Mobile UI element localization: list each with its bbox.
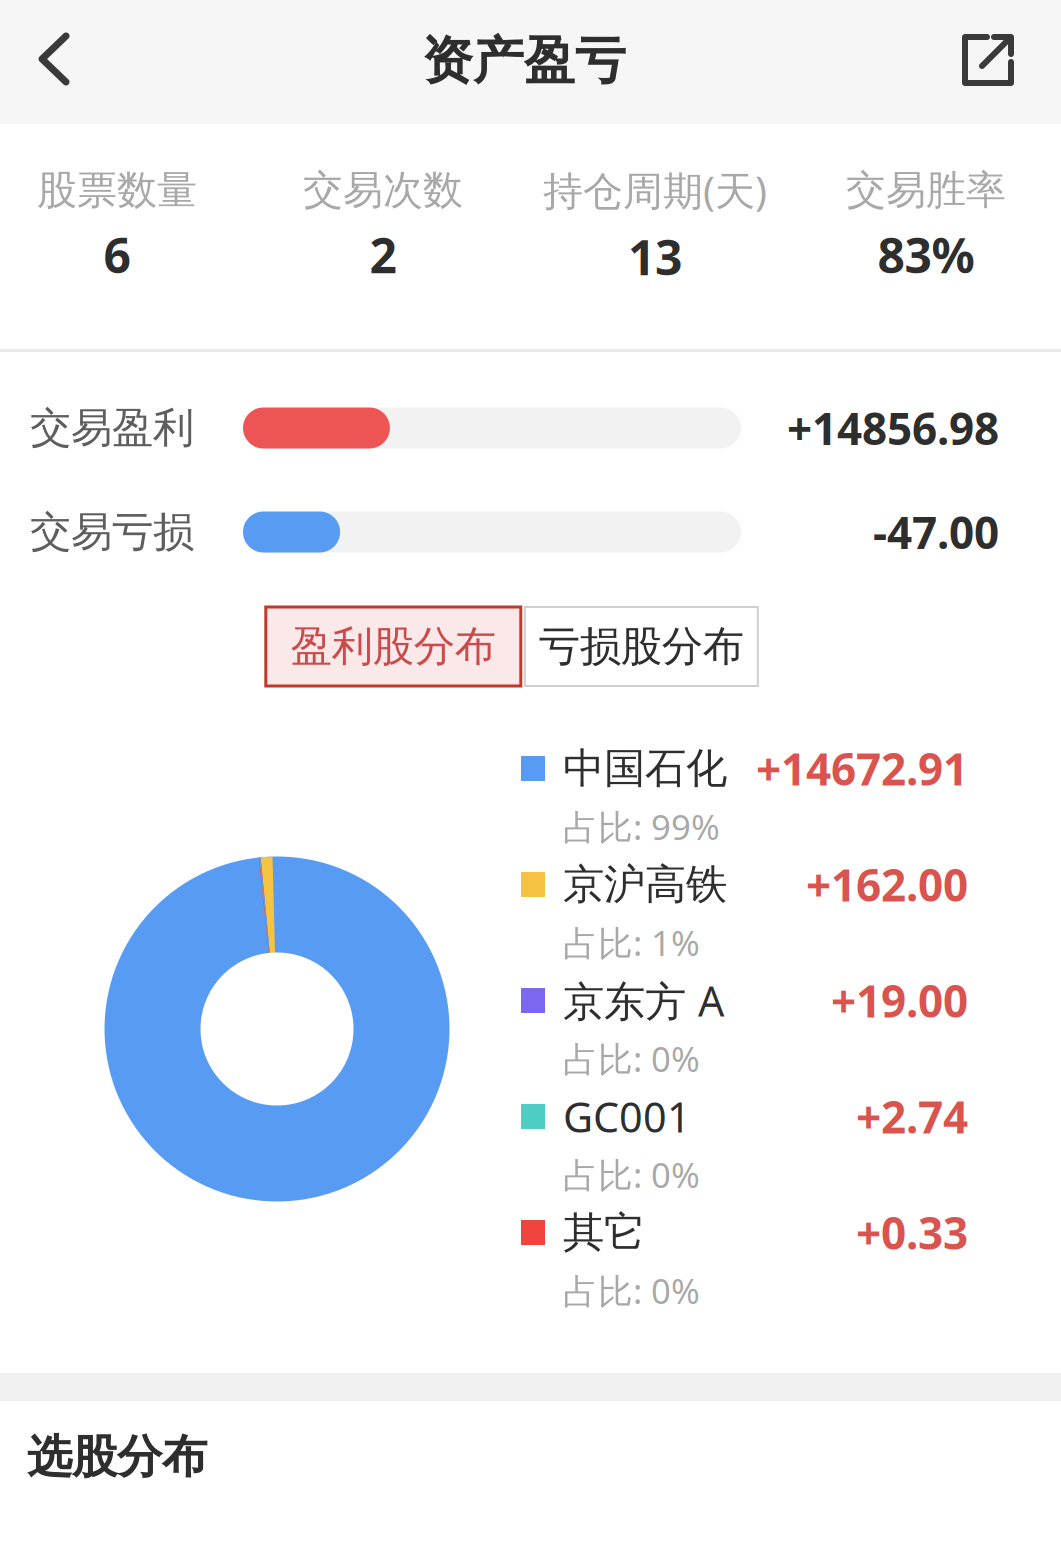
button[interactable]: 亏损股分布 [525,607,758,686]
staticText: 亏损股分布 [539,621,744,672]
button[interactable]: 中国石化 [521,737,968,853]
staticText: 持仓周期(天) [543,164,767,217]
staticText: +14672.91 [756,739,968,798]
staticText: 京沪高铁 [563,859,727,910]
staticText: 股票数量 [37,166,197,215]
button[interactable]: Back [0,0,108,121]
button[interactable]: 京沪高铁 [521,853,968,969]
staticText: 交易次数 [303,166,463,215]
staticText: +2.74 [856,1087,968,1146]
staticText: 6 [103,223,130,286]
staticText: 13 [628,225,682,288]
staticText: 83% [877,223,974,286]
button[interactable]: 京东方 A [521,969,968,1085]
staticText: 交易胜率 [846,166,1006,215]
button[interactable]: 其它 [521,1201,968,1317]
staticText: 选股分布 [27,1429,207,1485]
staticText: 中国石化 [563,743,727,794]
staticText: 资产盈亏 [422,30,626,92]
staticText: GC001 [563,1089,691,1144]
button[interactable]: 盈利股分布 [266,607,521,686]
staticText: 交易盈利 [30,403,194,453]
staticText: +19.00 [831,971,968,1030]
button[interactable]: GC001 [521,1085,968,1201]
staticText: -47.00 [873,503,999,561]
staticText: 盈利股分布 [291,621,496,672]
staticText: 占比: 0% [563,1035,700,1081]
staticText: 占比: 1% [563,919,700,965]
staticText: +14856.98 [787,399,999,457]
staticText: 占比: 99% [563,803,720,849]
staticText: +0.33 [856,1203,968,1262]
staticText: 占比: 0% [563,1267,700,1313]
staticText: +162.00 [806,855,968,914]
staticText: 2 [369,223,396,286]
button[interactable]: Share [931,0,1044,122]
staticText: 占比: 0% [563,1151,700,1197]
staticText: 其它 [563,1207,645,1258]
staticText: 交易亏损 [30,507,194,557]
staticText: 京东方 A [563,973,724,1028]
